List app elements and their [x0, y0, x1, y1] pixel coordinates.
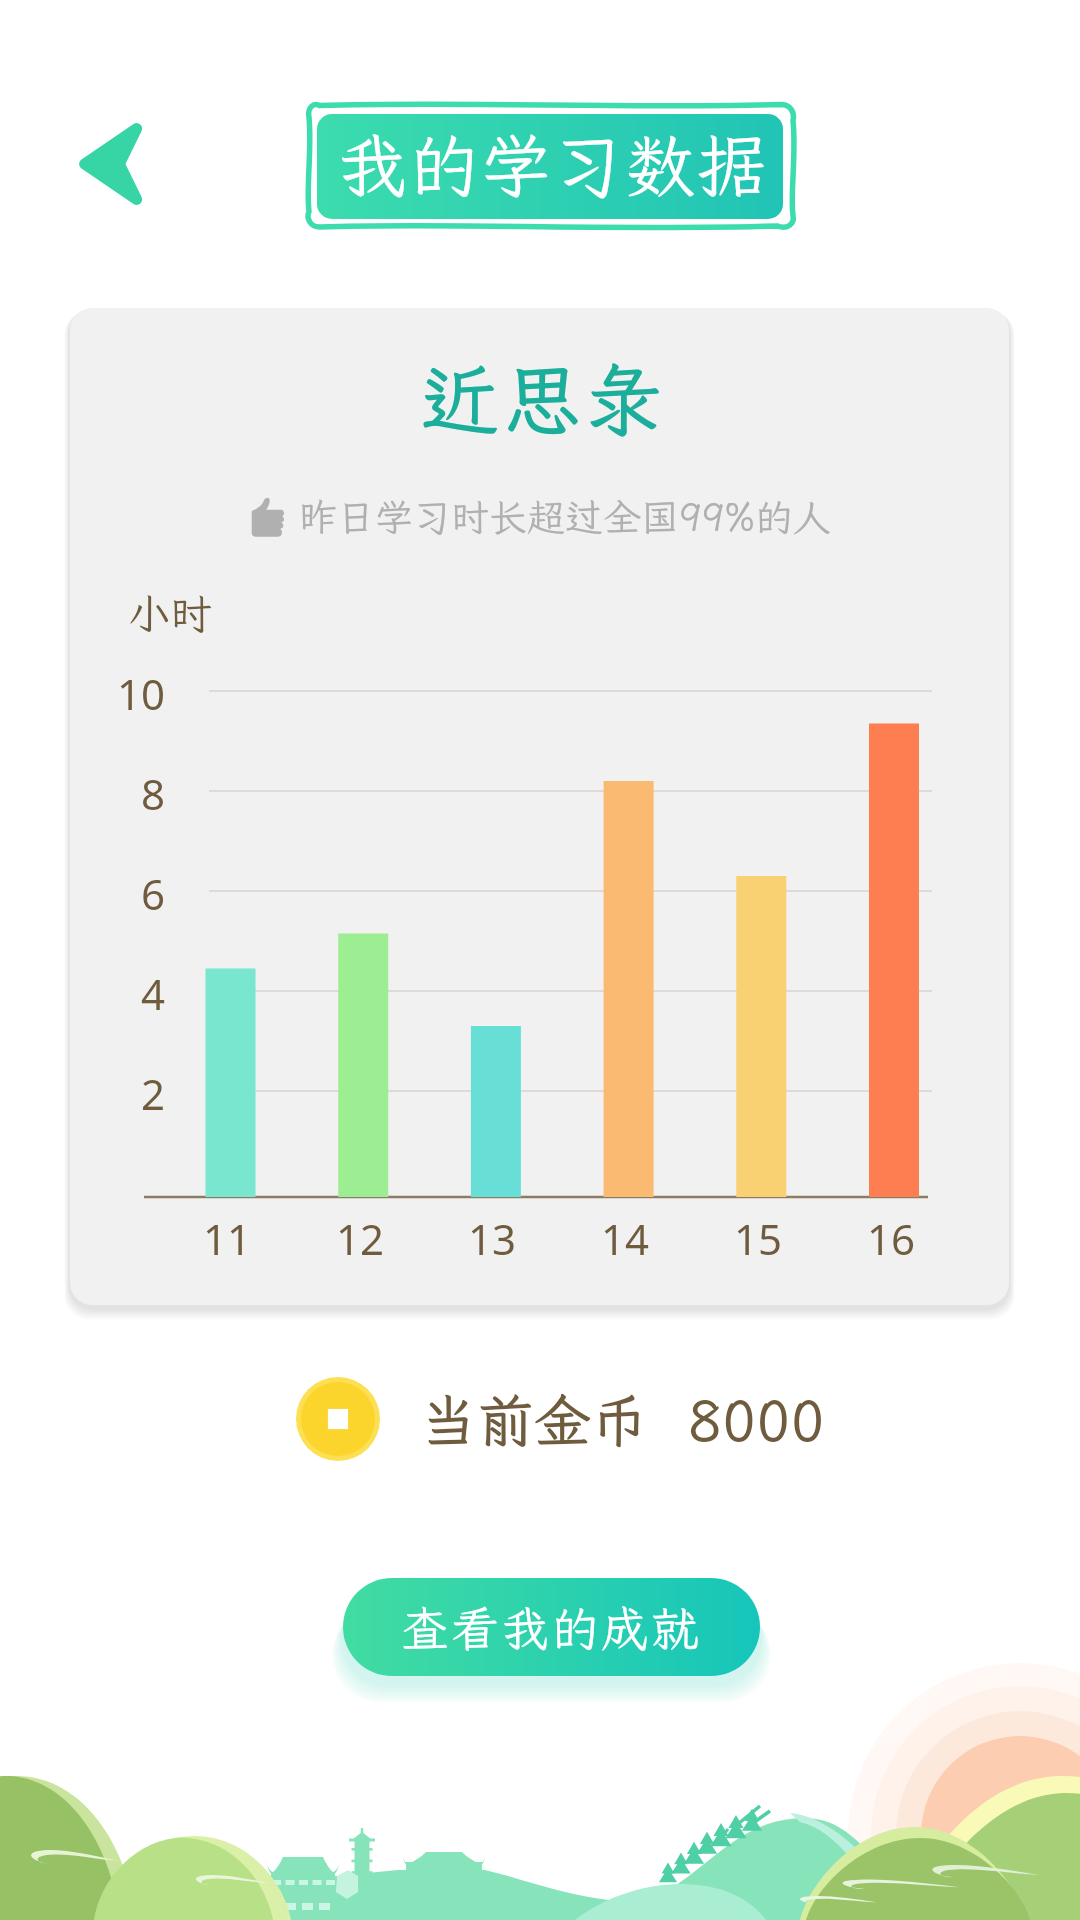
- staticText: 8: [141, 765, 166, 822]
- staticText: 15: [734, 1210, 783, 1267]
- staticText: 近思录: [421, 348, 668, 451]
- staticText: 我的学习数据: [337, 119, 769, 211]
- staticText: 6: [141, 865, 166, 922]
- button[interactable]: 当前金币 8000: [296, 1374, 825, 1464]
- staticText: 2: [141, 1065, 166, 1122]
- button[interactable]: 查看我的成就: [343, 1578, 760, 1676]
- staticText: 14: [601, 1210, 650, 1267]
- staticText: 12: [336, 1210, 385, 1267]
- staticText: 当前金币 8000: [420, 1382, 825, 1457]
- staticText: 10: [117, 665, 166, 722]
- button[interactable]: 我的学习数据: [300, 96, 804, 236]
- staticText: 16: [867, 1210, 916, 1267]
- staticText: 查看我的成就: [401, 1596, 702, 1659]
- staticText: 小时: [128, 586, 213, 641]
- button[interactable]: Back: [48, 104, 172, 224]
- staticText: 4: [141, 965, 166, 1022]
- staticText: 11: [203, 1210, 252, 1267]
- staticText: 昨日学习时长超过全国99%的人: [299, 492, 832, 542]
- staticText: 13: [468, 1210, 517, 1267]
